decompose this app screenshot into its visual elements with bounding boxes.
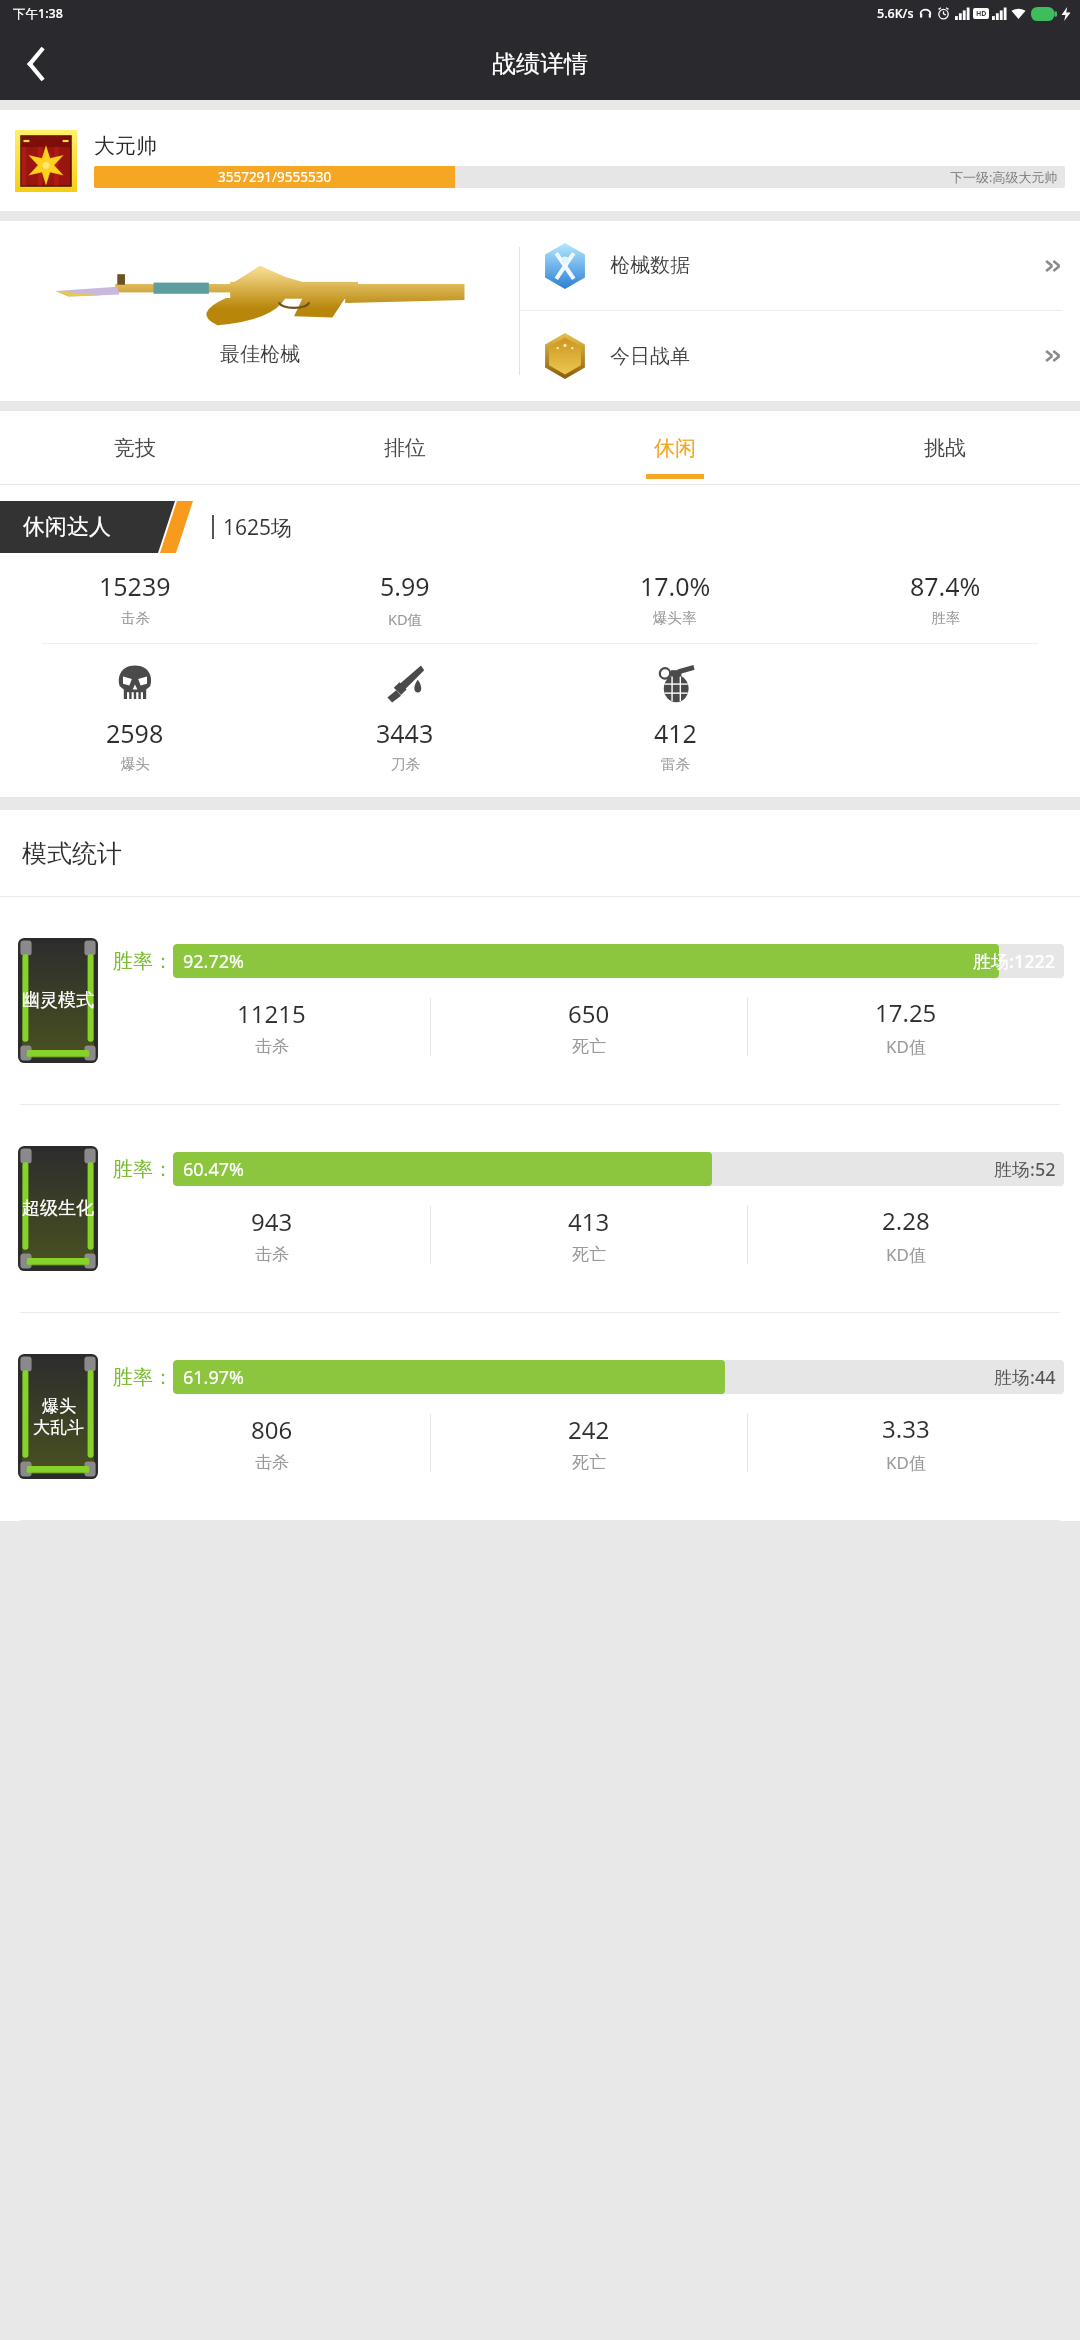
staticText: 击杀 bbox=[121, 609, 150, 627]
staticText: 模式统计 bbox=[22, 838, 122, 869]
staticText: 爆头 bbox=[42, 1396, 76, 1417]
staticText: 17.0% bbox=[640, 569, 711, 603]
staticText: KD值 bbox=[886, 1243, 926, 1266]
button[interactable]: 最佳枪械 bbox=[0, 221, 519, 401]
staticText: 爆头率 bbox=[653, 609, 697, 627]
staticText: 92.72% bbox=[183, 949, 244, 974]
button[interactable]: 挑战 bbox=[810, 411, 1080, 484]
staticText: 5.99 bbox=[380, 569, 430, 603]
button[interactable]: 枪械数据 bbox=[520, 221, 1080, 310]
staticText: 击杀 bbox=[255, 1036, 289, 1057]
staticText: 胜场:1222 bbox=[973, 949, 1056, 974]
staticText: 胜率 bbox=[931, 609, 960, 627]
staticText: 爆头 bbox=[121, 755, 150, 773]
staticText: 17.25 bbox=[875, 996, 937, 1029]
staticText: 胜率： bbox=[113, 1157, 173, 1182]
staticText: 下午1:38 bbox=[13, 5, 63, 22]
staticText: 943 bbox=[251, 1205, 293, 1238]
staticText: 休闲 bbox=[654, 435, 696, 461]
staticText: 战绩详情 bbox=[492, 49, 588, 79]
button[interactable]: 大元帅 bbox=[0, 110, 1080, 211]
staticText: 412 bbox=[654, 716, 697, 750]
staticText: 死亡 bbox=[572, 1036, 606, 1057]
staticText: 3.33 bbox=[882, 1412, 930, 1445]
staticText: 枪械数据 bbox=[610, 253, 690, 278]
staticText: 击杀 bbox=[255, 1452, 289, 1473]
button[interactable]: 竞技 bbox=[0, 411, 270, 484]
staticText: 竞技 bbox=[114, 435, 156, 461]
staticText: 胜场:52 bbox=[994, 1157, 1056, 1182]
staticText: 2.28 bbox=[882, 1204, 930, 1237]
staticText: 60.47% bbox=[183, 1157, 244, 1182]
staticText: 1625场 bbox=[223, 513, 293, 542]
staticText: 死亡 bbox=[572, 1244, 606, 1265]
staticText: 806 bbox=[251, 1413, 293, 1446]
staticText: 幽灵模式 bbox=[22, 989, 94, 1012]
staticText: 413 bbox=[568, 1205, 610, 1238]
staticText: 大元帅 bbox=[94, 133, 157, 159]
button[interactable]: 超级生化 bbox=[0, 1105, 1080, 1312]
button[interactable]: 爆头 bbox=[0, 1313, 1080, 1520]
staticText: 3557291/9555530 bbox=[218, 168, 332, 186]
staticText: 休闲达人 bbox=[23, 513, 111, 541]
button[interactable]: Back bbox=[0, 27, 72, 100]
staticText: 61.97% bbox=[183, 1365, 244, 1390]
staticText: 胜场:44 bbox=[994, 1365, 1056, 1390]
staticText: 超级生化 bbox=[22, 1197, 94, 1220]
staticText: KD值 bbox=[388, 609, 423, 629]
staticText: 11215 bbox=[237, 997, 306, 1030]
staticText: 大乱斗 bbox=[33, 1417, 84, 1438]
staticText: 3443 bbox=[376, 716, 434, 750]
staticText: 胜率： bbox=[113, 949, 173, 974]
staticText: 雷杀 bbox=[661, 755, 690, 773]
staticText: 刀杀 bbox=[391, 755, 420, 773]
staticText: 挑战 bbox=[924, 435, 966, 461]
staticText: 排位 bbox=[384, 435, 426, 461]
button[interactable]: 排位 bbox=[270, 411, 540, 484]
staticText: 87.4% bbox=[910, 569, 981, 603]
button[interactable]: 休闲 bbox=[540, 411, 810, 484]
staticText: 下一级:高级大元帅 bbox=[950, 168, 1058, 186]
staticText: 今日战单 bbox=[610, 344, 690, 369]
button[interactable]: 幽灵模式 bbox=[0, 897, 1080, 1104]
staticText: KD值 bbox=[886, 1451, 926, 1474]
staticText: 胜率： bbox=[113, 1365, 173, 1390]
staticText: 击杀 bbox=[255, 1244, 289, 1265]
staticText: 2598 bbox=[106, 716, 164, 750]
staticText: 最佳枪械 bbox=[220, 342, 300, 367]
button[interactable]: 今日战单 bbox=[520, 311, 1080, 401]
staticText: 242 bbox=[568, 1413, 610, 1446]
staticText: 死亡 bbox=[572, 1452, 606, 1473]
staticText: 5.6K/s bbox=[877, 5, 914, 22]
staticText: 15239 bbox=[99, 569, 171, 603]
staticText: KD值 bbox=[886, 1035, 926, 1058]
staticText: HD bbox=[976, 9, 987, 19]
staticText: 650 bbox=[568, 997, 610, 1030]
